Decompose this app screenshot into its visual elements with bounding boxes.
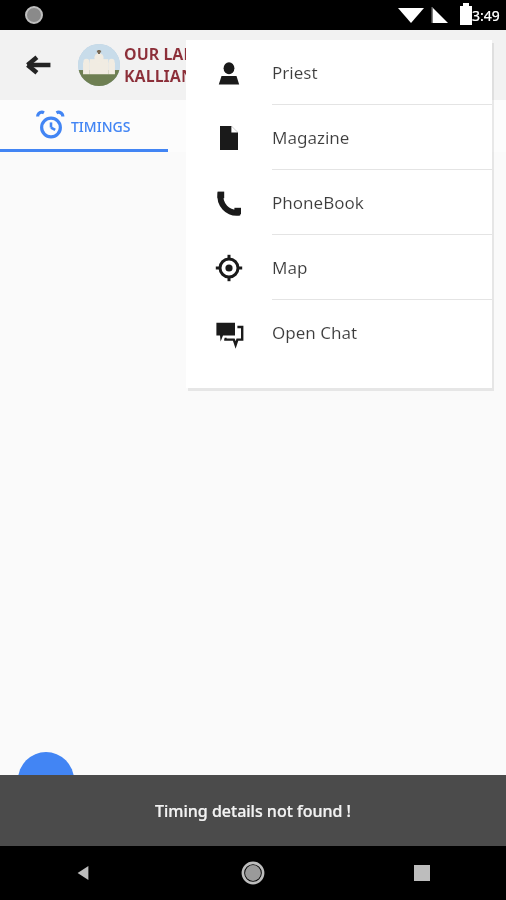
staticText: Timing details not found !	[155, 800, 351, 822]
staticText: KALLIANPUR	[124, 65, 227, 87]
staticText: Priest	[272, 61, 318, 84]
staticText: PhoneBook	[272, 191, 364, 214]
button[interactable]: Home	[168, 846, 337, 900]
button[interactable]: Open Chat	[186, 300, 492, 365]
button[interactable]: Map	[186, 235, 492, 300]
button[interactable]: Back	[0, 30, 78, 100]
button[interactable]: Timing details not found !	[0, 775, 506, 846]
staticText: 3:49	[472, 6, 500, 25]
button[interactable]: Add	[18, 752, 74, 808]
button[interactable]: PhoneBook	[186, 170, 492, 235]
staticText: Map	[272, 256, 308, 279]
staticText: Magazine	[272, 126, 350, 149]
button[interactable]: Priest	[186, 40, 492, 105]
staticText: OUR LADY	[124, 43, 205, 65]
button[interactable]: TIMINGS	[0, 100, 168, 152]
button[interactable]: Back	[0, 846, 168, 900]
button[interactable]: Recent apps	[337, 846, 506, 900]
staticText: TIMINGS	[71, 117, 131, 136]
button[interactable]: Magazine	[186, 105, 492, 170]
staticText: Open Chat	[272, 321, 358, 344]
